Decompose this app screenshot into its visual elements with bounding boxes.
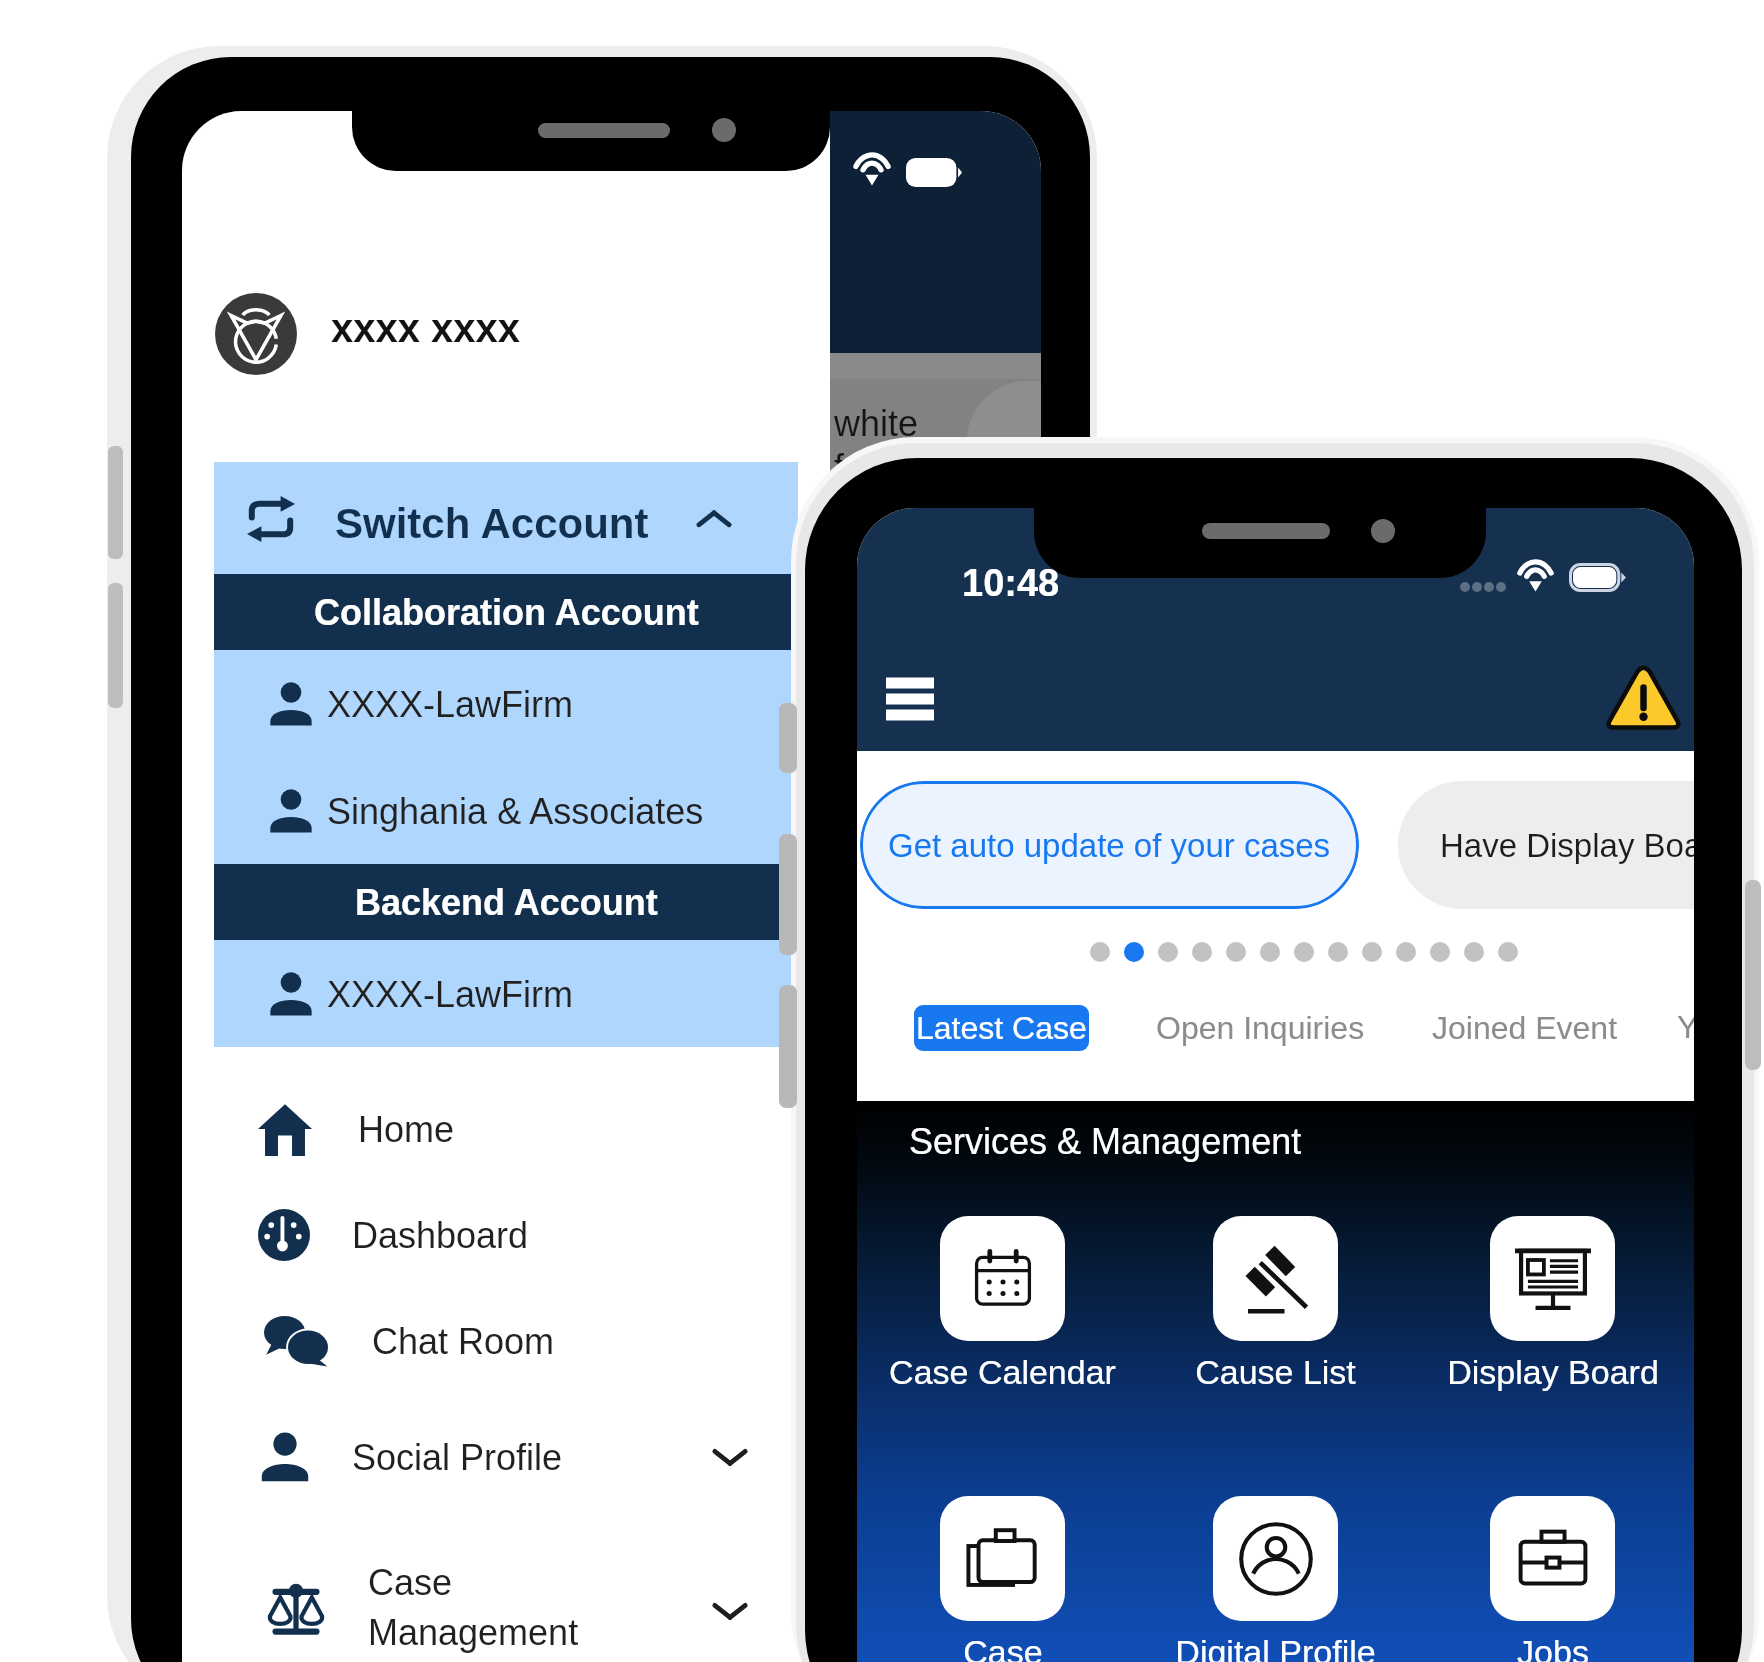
button[interactable]: Joined Event xyxy=(1427,1001,1623,1055)
button[interactable]: Digital Profile xyxy=(1133,1496,1418,1662)
button[interactable]: Home xyxy=(182,1076,830,1182)
staticText: XXXX-LawFirm xyxy=(327,974,574,1014)
staticText: Cause List xyxy=(1195,1353,1356,1391)
staticText: Chat Room xyxy=(372,1321,555,1361)
staticText: Jobs xyxy=(1517,1633,1589,1662)
button[interactable]: XXXX-LawFirm xyxy=(214,940,798,1047)
button[interactable]: Alerts xyxy=(1607,663,1680,731)
button[interactable]: Case xyxy=(182,1538,830,1662)
staticText: Case xyxy=(963,1633,1043,1662)
staticText: Social Profile xyxy=(352,1437,563,1477)
button[interactable]: Cause List xyxy=(1133,1216,1418,1391)
staticText: Y xyxy=(1677,1009,1694,1045)
button[interactable]: Case Calendar xyxy=(860,1216,1145,1391)
staticText: XXXX-LawFirm xyxy=(327,684,574,724)
staticText: Case Calendar xyxy=(889,1353,1116,1391)
staticText: Singhania & Associates xyxy=(327,791,704,831)
button[interactable]: Get auto update of your cases xyxy=(860,781,1359,909)
button[interactable]: Case xyxy=(860,1496,1145,1662)
staticText: Get auto update of your cases xyxy=(888,827,1331,864)
button[interactable]: Singhania & Associates xyxy=(214,757,798,864)
staticText: xxxx xxxx xyxy=(331,306,521,351)
staticText: Dashboard xyxy=(352,1215,529,1255)
button[interactable]: Open navigation menu xyxy=(886,678,934,720)
button[interactable]: Latest Case xyxy=(914,1005,1089,1051)
button[interactable]: Collaboration Account xyxy=(214,574,798,650)
staticText: Backend Account xyxy=(355,882,658,922)
staticText: Display Board xyxy=(1447,1353,1659,1391)
staticText: white xyxy=(834,403,919,443)
button[interactable]: Open Inquiries xyxy=(1151,1001,1369,1055)
staticText: for xyxy=(834,447,877,487)
button[interactable]: Jobs xyxy=(1410,1496,1694,1662)
staticText: Joined Event xyxy=(1432,1010,1618,1046)
button[interactable]: Social Profile xyxy=(182,1404,830,1510)
button[interactable]: Have Display Board xyxy=(1398,781,1694,909)
staticText: Digital Profile xyxy=(1175,1633,1376,1662)
staticText: Switch Account xyxy=(335,500,649,547)
button[interactable]: Switch Account xyxy=(214,462,798,574)
staticText: 10:48 xyxy=(962,562,1060,604)
staticText: Collaboration Account xyxy=(314,592,699,632)
staticText: Home xyxy=(358,1109,455,1149)
button[interactable]: Chat Room xyxy=(182,1288,830,1394)
staticText: Latest Case xyxy=(916,1010,1087,1046)
staticText: Open Inquiries xyxy=(1156,1010,1365,1046)
staticText: Management xyxy=(368,1612,579,1652)
button[interactable]: Profile picture xyxy=(215,293,297,375)
button[interactable]: Dashboard xyxy=(182,1182,830,1288)
button[interactable]: XXXX-LawFirm xyxy=(214,650,798,757)
staticText: Case xyxy=(368,1562,453,1602)
button[interactable]: Display Board xyxy=(1410,1216,1694,1391)
staticText: Have Display Board xyxy=(1440,827,1694,864)
staticText: Services & Management xyxy=(909,1121,1302,1161)
button[interactable]: Backend Account xyxy=(214,864,798,940)
